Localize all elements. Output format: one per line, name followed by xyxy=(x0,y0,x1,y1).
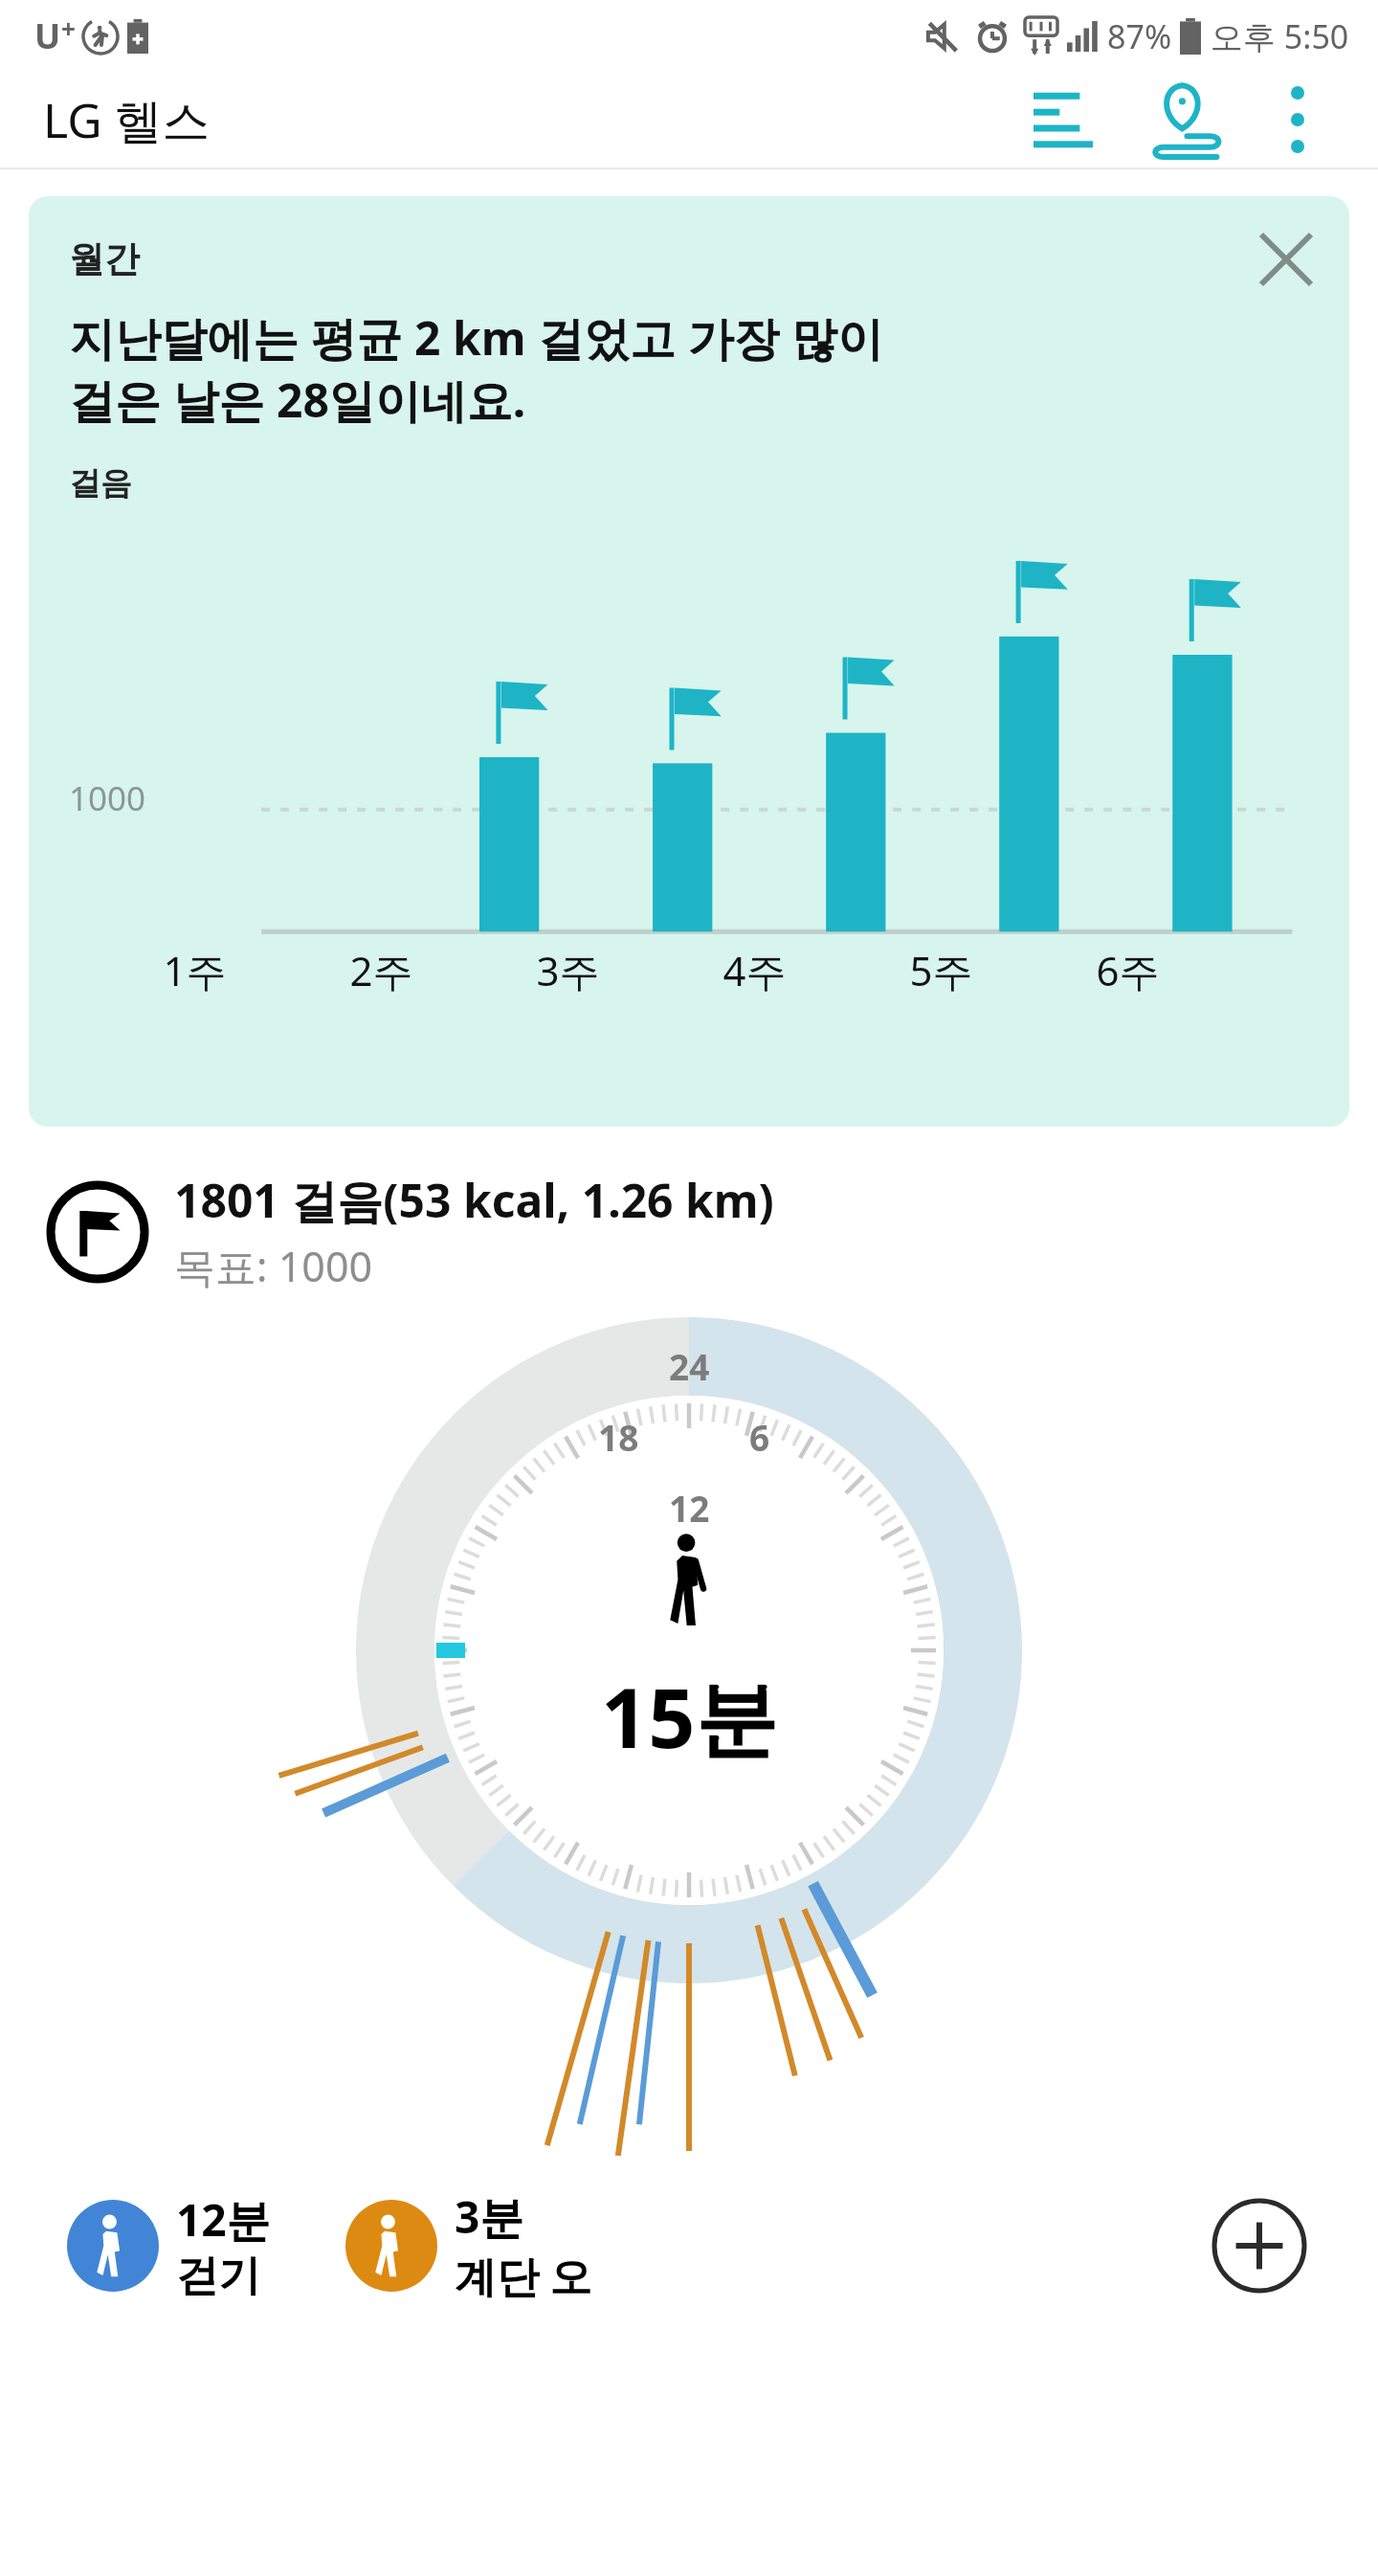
staticText: 15분 xyxy=(601,1660,778,1772)
staticText: 12분 xyxy=(176,2189,271,2250)
staticText: U xyxy=(34,12,61,59)
staticText: 12 xyxy=(669,1484,710,1532)
button[interactable]: 24 xyxy=(0,1294,1378,2175)
staticText: 6 xyxy=(749,1413,770,1461)
staticText: 1801 걸음(53 kcal, 1.26 km) xyxy=(174,1169,774,1232)
staticText: 24 xyxy=(669,1342,710,1390)
staticText: 월간 xyxy=(69,236,140,281)
button[interactable]: More options xyxy=(1250,72,1345,168)
button[interactable]: Menu xyxy=(1011,72,1116,168)
button[interactable]: 12분 xyxy=(67,2189,271,2302)
button[interactable]: 1801 걸음(53 kcal, 1.26 km) xyxy=(46,1169,1378,1294)
staticText: 87% xyxy=(1107,14,1172,58)
button[interactable]: Location route xyxy=(1133,72,1238,168)
staticText: 5주 xyxy=(909,943,973,997)
staticText: 걸음 xyxy=(69,463,132,504)
staticText: 계단 오 xyxy=(455,2247,592,2304)
staticText: 3주 xyxy=(536,943,600,997)
staticText: 오후 5:50 xyxy=(1211,14,1349,58)
staticText: 4주 xyxy=(722,943,787,997)
staticText: + xyxy=(61,11,76,45)
staticText: 목표: 1000 xyxy=(174,1238,373,1294)
staticText: 2주 xyxy=(349,943,413,997)
staticText: 3분 xyxy=(455,2186,524,2247)
staticText: 지난달에는 평균 2 km 걸었고 가장 많이 걸은 날은 28일이네요. xyxy=(69,306,883,431)
staticText: LG 헬스 xyxy=(43,87,211,152)
button[interactable]: 3분 xyxy=(345,2186,592,2304)
button[interactable]: Add activity xyxy=(1208,2194,1311,2297)
staticText: 18 xyxy=(598,1413,639,1461)
staticText: 1주 xyxy=(163,943,227,997)
button[interactable]: Close xyxy=(29,196,1349,1127)
button[interactable]: Close xyxy=(1240,213,1332,305)
staticText: 걷기 xyxy=(176,2250,260,2302)
staticText: 1000 xyxy=(69,775,146,821)
staticText: 6주 xyxy=(1096,943,1160,997)
